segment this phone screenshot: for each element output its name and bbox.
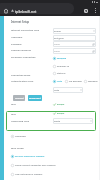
staticText: Disconnect	[29, 97, 41, 100]
staticText: Authentication Type	[11, 80, 34, 83]
staticText: IPv6	[11, 113, 16, 116]
button[interactable]: Enable	[53, 112, 65, 115]
staticText: 2	[85, 9, 87, 13]
button[interactable]: Do NOT Clone MAC Address	[11, 155, 45, 158]
staticText: Password	[11, 43, 22, 46]
button[interactable]: Advanced	[11, 135, 26, 138]
staticText: dslite	[54, 120, 61, 123]
button[interactable]: acct@isp	[53, 35, 96, 41]
button[interactable]: Disconnect	[28, 95, 42, 101]
button[interactable]: More options	[91, 6, 100, 15]
staticText: Auto	[54, 89, 60, 92]
staticText: Confirm Password	[11, 49, 31, 52]
button[interactable]: Static IP	[53, 72, 66, 75]
button[interactable]: Clone Current Computer MAC Address	[11, 164, 56, 167]
staticText: Static IP	[57, 72, 66, 75]
staticText: •••••••	[54, 50, 60, 53]
staticText: Clone Current Computer MAC Address	[15, 164, 56, 167]
button[interactable]: Auto	[53, 80, 63, 83]
staticText: Enable	[57, 112, 65, 115]
staticText: acct@isp	[54, 37, 64, 40]
staticText: Username	[11, 36, 23, 39]
staticText: Connect	[15, 97, 24, 100]
staticText: Auto	[57, 80, 63, 83]
button[interactable]: •••••••	[53, 41, 96, 47]
button[interactable]: Enable	[53, 103, 65, 106]
button[interactable]: •••••••	[53, 48, 96, 54]
staticText: Dynamic IP	[57, 65, 70, 68]
button[interactable]: Auto	[53, 87, 83, 93]
staticText: tplinkwifi.net	[15, 9, 37, 13]
button[interactable]: Home	[0, 5, 11, 16]
button[interactable]: Tabs	[80, 5, 91, 16]
staticText: Internet Setup	[11, 20, 30, 23]
staticText: On Demand	[69, 80, 82, 83]
staticText: Manually	[88, 80, 98, 83]
staticText: MAC Clone	[11, 146, 24, 149]
staticText: •••••••	[54, 43, 60, 46]
staticText: Use Custom MAC Address	[15, 173, 43, 176]
button[interactable]: Manually	[84, 80, 98, 83]
staticText: Connection Mode	[11, 74, 31, 77]
button[interactable]: tplinkwifi.net	[11, 5, 80, 16]
staticText: Disabled	[57, 57, 67, 60]
staticText: PPPoE	[54, 30, 61, 33]
staticText: Enable	[57, 103, 65, 106]
staticText: Secondary Connection	[11, 56, 36, 59]
button[interactable]: On Demand	[65, 80, 82, 83]
staticText: Addressing Type	[11, 120, 30, 123]
button[interactable]: Disabled	[53, 57, 67, 60]
staticText: Advanced	[15, 135, 26, 138]
button[interactable]: PPPoE	[53, 28, 96, 34]
button[interactable]: Connect	[13, 95, 25, 101]
button[interactable]: Dynamic IP	[53, 65, 70, 68]
staticText: IPv6	[11, 103, 16, 106]
staticText: Do NOT Clone MAC Address	[15, 155, 45, 158]
button[interactable]: Use Custom MAC Address	[11, 173, 43, 176]
button[interactable]: dslite	[53, 118, 93, 124]
staticText: Internet Connection Type	[11, 29, 40, 32]
